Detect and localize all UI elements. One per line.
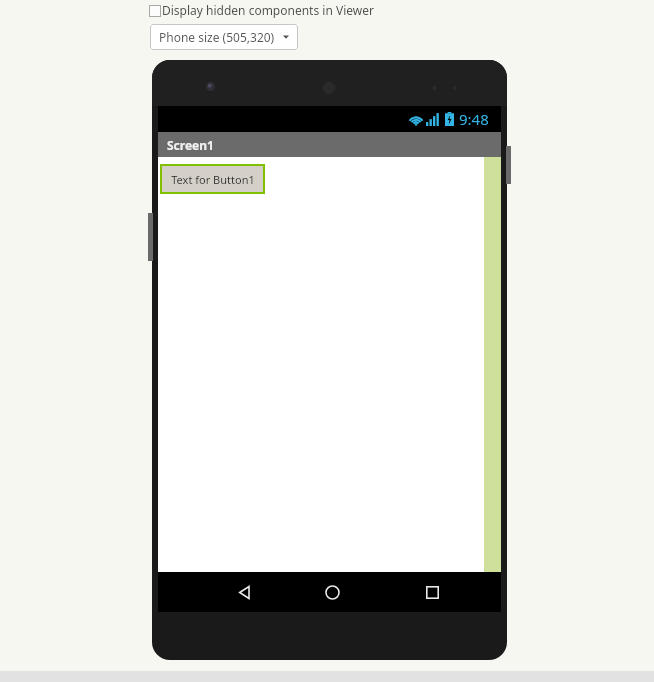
button[interactable]: Text for Button1 — [162, 166, 263, 192]
staticText: Phone size (505,320) — [159, 29, 275, 45]
button[interactable]: Recent apps — [404, 572, 460, 612]
button[interactable]: Phone size (505,320) — [150, 24, 298, 50]
button[interactable]: Back — [216, 572, 272, 612]
staticText: 9:48 — [459, 109, 489, 129]
staticText: Screen1 — [167, 137, 214, 153]
button[interactable]: Display hidden components in Viewer — [149, 5, 161, 17]
staticText: Display hidden components in Viewer — [162, 2, 374, 18]
button[interactable]: Home — [304, 572, 360, 612]
staticText: Text for Button1 — [171, 172, 255, 187]
